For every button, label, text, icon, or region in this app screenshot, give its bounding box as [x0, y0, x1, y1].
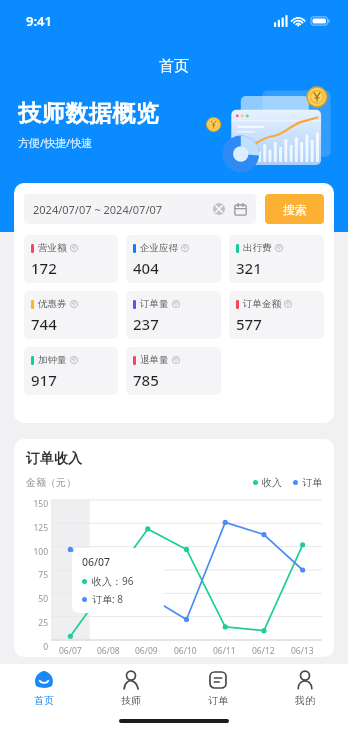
other: 我的 [295, 670, 315, 690]
staticText: 100 [26, 546, 48, 558]
staticText: 06/07 [82, 555, 111, 569]
staticText: 首页 [159, 57, 189, 76]
staticText: 企业应得 [140, 242, 178, 254]
other: Clear [213, 203, 225, 215]
button[interactable]: 加钟量 [24, 347, 118, 395]
staticText: 785 [133, 370, 159, 390]
staticText: 06/08 [97, 645, 120, 657]
other: Pick date [234, 203, 247, 216]
staticText: 我的 [295, 694, 315, 707]
staticText: 321 [236, 258, 262, 278]
staticText: 06/12 [252, 645, 275, 657]
staticText: 订单量 [140, 298, 169, 310]
staticText: 125 [26, 522, 48, 534]
staticText: 出行费 [243, 242, 272, 254]
button[interactable]: 2024/07/07 ~ 2024/07/07 [24, 194, 256, 224]
button[interactable]: 订单 [174, 664, 261, 714]
staticText: 150 [26, 498, 48, 510]
staticText: 06/10 [174, 645, 197, 657]
staticText: 2024/07/07 ~ 2024/07/07 [33, 202, 163, 217]
staticText: 订单金额 [243, 298, 281, 310]
staticText: 06/11 [213, 645, 236, 657]
staticText: 75 [26, 569, 48, 581]
staticText: 404 [133, 258, 159, 278]
staticText: 237 [133, 314, 159, 334]
other: 首页 [34, 670, 54, 690]
staticText: 172 [31, 258, 57, 278]
other: 技师 [121, 670, 141, 690]
staticText: 25 [26, 617, 48, 629]
staticText: 收入：96 [92, 574, 134, 588]
button[interactable]: 订单量 [126, 291, 221, 339]
button[interactable]: 首页 [0, 664, 87, 714]
button[interactable]: 退单量 [126, 347, 221, 395]
button[interactable]: 技师 [87, 664, 174, 714]
staticText: 订单 [302, 476, 322, 489]
button[interactable]: 出行费 [229, 235, 324, 283]
staticText: 订单: 8 [92, 592, 123, 606]
other: 订单 [208, 670, 228, 690]
staticText: 收入 [262, 476, 282, 489]
staticText: 搜索 [283, 202, 307, 217]
staticText: 9:41 [26, 12, 52, 30]
button[interactable]: 订单金额 [229, 291, 324, 339]
staticText: 917 [31, 370, 57, 390]
staticText: 744 [31, 314, 57, 334]
staticText: 50 [26, 593, 48, 605]
staticText: 营业额 [38, 242, 67, 254]
staticText: 06/13 [291, 645, 314, 657]
staticText: 首页 [34, 694, 54, 707]
button[interactable]: 搜索 [265, 194, 324, 224]
button[interactable]: 企业应得 [126, 235, 221, 283]
staticText: 订单收入 [26, 450, 82, 468]
staticText: 加钟量 [38, 354, 67, 366]
staticText: 退单量 [140, 354, 169, 366]
staticText: 577 [236, 314, 262, 334]
staticText: 订单 [208, 694, 228, 707]
staticText: 金额（元） [26, 476, 76, 489]
staticText: 技师数据概览 [18, 99, 159, 128]
staticText: 技师 [121, 694, 141, 707]
staticText: 方便/快捷/快速 [18, 135, 93, 150]
button[interactable]: 营业额 [24, 235, 118, 283]
button[interactable]: 优惠券 [24, 291, 118, 339]
staticText: 06/09 [135, 645, 158, 657]
staticText: 06/07 [59, 645, 82, 657]
staticText: 优惠券 [38, 298, 67, 310]
staticText: 0 [26, 641, 48, 653]
button[interactable]: 我的 [261, 664, 348, 714]
